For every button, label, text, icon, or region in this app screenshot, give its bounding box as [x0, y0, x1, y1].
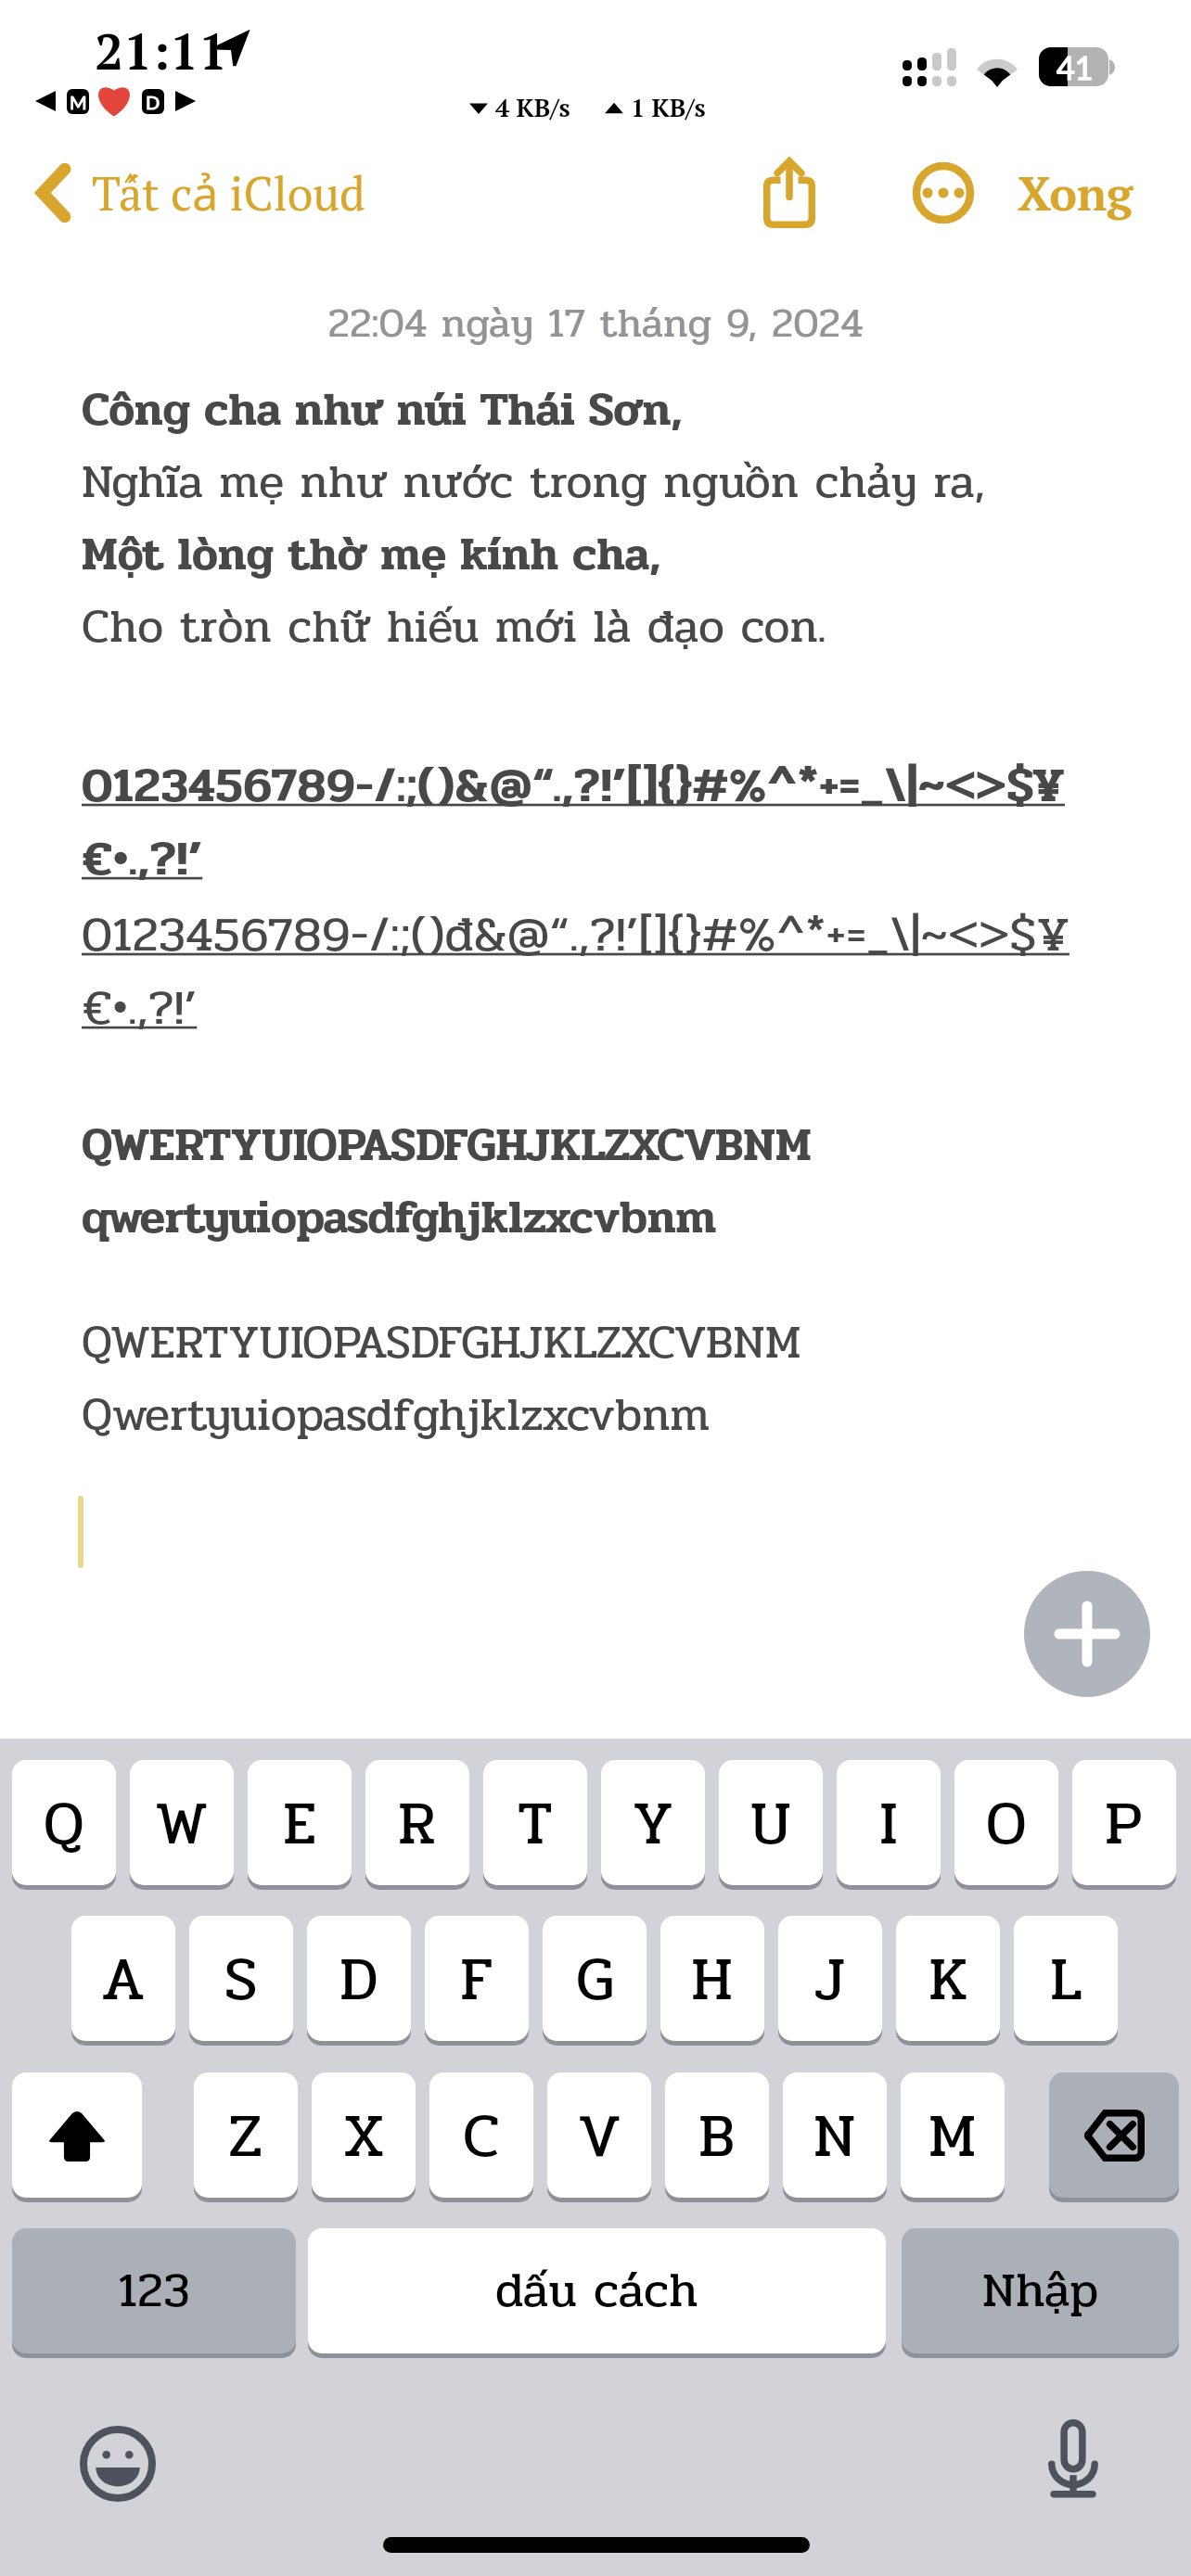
button[interactable]: More options	[897, 147, 990, 239]
staticText: M	[70, 91, 87, 113]
staticText: L	[1050, 1932, 1082, 2026]
staticText: Qwertyuiopasdfghjklzxcvbnm	[82, 1379, 711, 1451]
button[interactable]: U	[719, 1760, 823, 1885]
button[interactable]: Voice input	[1025, 2411, 1121, 2507]
staticText: Z	[228, 2088, 263, 2183]
button[interactable]: O	[954, 1760, 1058, 1885]
button[interactable]: H	[660, 1916, 764, 2041]
staticText: Tất cả iCloud	[92, 161, 365, 224]
staticText: Q	[44, 1776, 84, 1870]
staticText: Nhập	[982, 2253, 1099, 2328]
staticText: G	[576, 1932, 614, 2026]
staticText: dấu cách	[495, 2253, 698, 2328]
staticText: O	[986, 1776, 1027, 1870]
staticText: M	[928, 2088, 977, 2183]
staticText: P	[1105, 1776, 1144, 1870]
button[interactable]: Add attachment	[1024, 1571, 1150, 1697]
button[interactable]: N	[783, 2072, 887, 2198]
staticText: H	[691, 1932, 734, 2026]
button[interactable]: P	[1072, 1760, 1176, 1885]
button[interactable]: Q	[12, 1760, 116, 1885]
button[interactable]: L	[1014, 1916, 1118, 2041]
staticText: Công cha như núi Thái Sơn,	[82, 374, 683, 446]
staticText: J	[815, 1932, 846, 2026]
staticText: 1 KB/s	[631, 91, 706, 124]
staticText: N	[813, 2088, 856, 2183]
button[interactable]: Backspace	[1049, 2072, 1179, 2198]
button[interactable]: B	[665, 2072, 769, 2198]
staticText: F	[460, 1932, 493, 2026]
staticText: Nghĩa mẹ như nước trong nguồn chảy ra,	[82, 446, 985, 518]
staticText: 41	[1057, 48, 1094, 86]
button[interactable]: K	[896, 1916, 1000, 2041]
button[interactable]: Z	[194, 2072, 298, 2198]
staticText: T	[518, 1776, 553, 1870]
staticText: X	[343, 2088, 385, 2183]
button[interactable]: Tất cả iCloud	[38, 161, 365, 224]
staticText: E	[283, 1776, 316, 1870]
staticText: qwertyuiopasdfghjklzxcvbnm	[82, 1181, 717, 1254]
button[interactable]: Share	[743, 147, 836, 239]
staticText: 21:11	[95, 17, 228, 84]
button[interactable]: 123	[12, 2228, 296, 2353]
button[interactable]: V	[547, 2072, 651, 2198]
staticText: 4 KB/s	[495, 91, 570, 124]
staticText: K	[928, 1932, 968, 2026]
staticText: V	[578, 2088, 621, 2183]
staticText: Một lòng thờ mẹ kính cha,	[82, 518, 661, 591]
staticText: I	[879, 1776, 898, 1870]
staticText: QWERTYUIOPASDFGHJKLZXCVBNM	[82, 1307, 801, 1379]
button[interactable]: Shift	[12, 2072, 142, 2198]
button[interactable]: dấu cách	[308, 2228, 886, 2353]
staticText: 123	[118, 2253, 190, 2328]
button[interactable]: Emoji keyboard	[70, 2416, 166, 2512]
button[interactable]: D	[307, 1916, 411, 2041]
button[interactable]: W	[130, 1760, 234, 1885]
staticText: Y	[633, 1776, 673, 1870]
staticText: S	[224, 1932, 258, 2026]
button[interactable]: A	[71, 1916, 175, 2041]
button[interactable]: G	[543, 1916, 647, 2041]
staticText: 0123456789-/:;()&@“.,?!’[]{}#%^*+=_\|~<>…	[82, 747, 1111, 897]
button[interactable]: Nhập	[902, 2228, 1179, 2353]
button[interactable]: T	[483, 1760, 587, 1885]
staticText: QWERTYUIOPASDFGHJKLZXCVBNM	[82, 1109, 812, 1181]
staticText: B	[698, 2088, 736, 2183]
button[interactable]: Xong	[1005, 153, 1146, 233]
staticText: Xong	[1018, 162, 1133, 223]
button[interactable]: M	[901, 2072, 1005, 2198]
staticText: A	[101, 1932, 146, 2026]
staticText: 22:04 ngày 17 tháng 9, 2024	[0, 292, 1191, 355]
button[interactable]: Y	[601, 1760, 705, 1885]
staticText: R	[398, 1776, 437, 1870]
button[interactable]: J	[778, 1916, 882, 2041]
button[interactable]: I	[837, 1760, 941, 1885]
staticText: 0123456789-/:;()đ&@“.,?!’[]{}#%^*+=_\|~<…	[82, 897, 1111, 1046]
staticText: D	[339, 1932, 378, 2026]
button[interactable]: R	[365, 1760, 469, 1885]
staticText: U	[750, 1776, 791, 1870]
staticText: W	[155, 1776, 209, 1870]
button[interactable]: E	[248, 1760, 352, 1885]
button[interactable]: C	[429, 2072, 533, 2198]
staticText: C	[463, 2088, 500, 2183]
staticText: D	[146, 91, 160, 113]
button[interactable]: S	[189, 1916, 293, 2041]
button[interactable]: X	[312, 2072, 416, 2198]
button[interactable]: F	[425, 1916, 529, 2041]
staticText: Cho tròn chữ hiếu mới là đạo con.	[82, 591, 826, 663]
